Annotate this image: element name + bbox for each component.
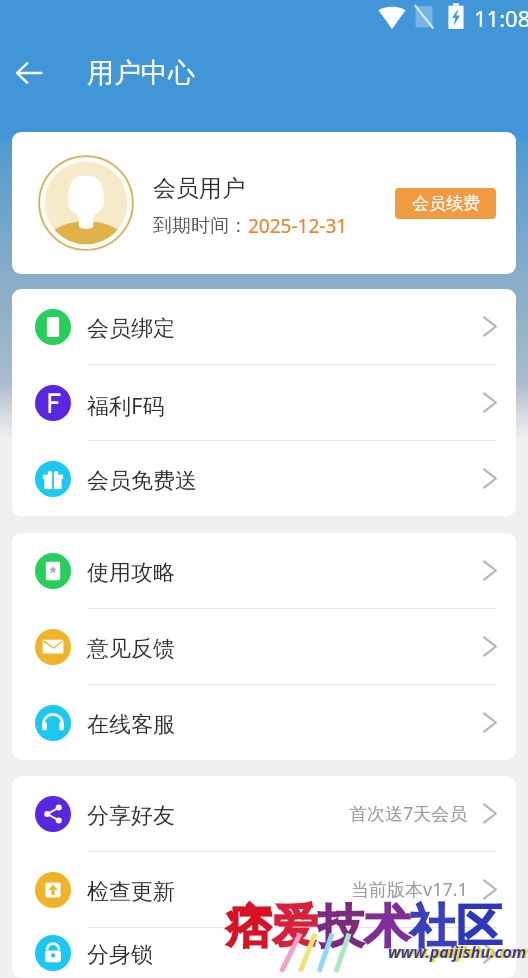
staticText: 在线客服 bbox=[87, 711, 175, 739]
staticText: 检查更新 bbox=[87, 878, 175, 906]
staticText: 社 bbox=[410, 898, 456, 956]
button[interactable]: 意见反馈 bbox=[12, 609, 516, 684]
button[interactable]: 会员绑定 bbox=[12, 289, 516, 364]
button[interactable]: 分身锁 bbox=[12, 928, 516, 978]
staticText: 术 bbox=[364, 898, 410, 956]
staticText: www.paijishu.com bbox=[388, 941, 528, 963]
staticText: 爱 bbox=[272, 898, 318, 956]
button[interactable]: 使用攻略 bbox=[12, 533, 516, 608]
button[interactable]: 分享好友 bbox=[12, 776, 516, 851]
staticText: 首次送7天会员 bbox=[349, 801, 468, 826]
staticText: 到期时间： bbox=[153, 214, 248, 238]
staticText: 分身锁 bbox=[87, 941, 153, 969]
staticText: 福利F码 bbox=[87, 390, 165, 420]
staticText: 意见反馈 bbox=[87, 635, 175, 663]
button[interactable]: 检查更新 bbox=[12, 852, 516, 927]
button[interactable]: 会员用户 bbox=[12, 132, 516, 274]
staticText: 使用攻略 bbox=[87, 559, 175, 587]
button[interactable]: 会员免费送 bbox=[12, 441, 516, 516]
staticText: 当前版本v17.1 bbox=[351, 877, 468, 902]
staticText: 11:08 bbox=[474, 3, 528, 33]
staticText: 技 bbox=[318, 898, 364, 956]
staticText: 分享好友 bbox=[87, 802, 175, 830]
staticText: 会员续费 bbox=[412, 193, 480, 214]
button[interactable]: Back bbox=[0, 44, 58, 102]
staticText: 2025-12-31 bbox=[248, 213, 348, 239]
staticText: 痞 bbox=[226, 898, 272, 956]
button[interactable]: 在线客服 bbox=[12, 685, 516, 760]
staticText: 用户中心 bbox=[87, 56, 195, 90]
staticText: 会员免费送 bbox=[87, 467, 197, 495]
staticText: 会员绑定 bbox=[87, 315, 175, 343]
staticText: www.paijishu.com bbox=[388, 941, 527, 963]
staticText: 区 bbox=[456, 898, 502, 956]
button[interactable]: 福利F码 bbox=[12, 365, 516, 440]
staticText: 会员用户 bbox=[153, 174, 245, 203]
button[interactable]: 会员续费 bbox=[395, 188, 496, 219]
